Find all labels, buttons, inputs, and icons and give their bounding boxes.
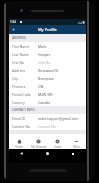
staticText: Postal Code (12, 92, 38, 97)
button[interactable]: Contact No (9, 122, 86, 130)
staticText: Brampton (38, 76, 55, 81)
staticText: 1:34 (10, 20, 17, 24)
staticText: Hopper (38, 52, 51, 57)
staticText: ON (38, 84, 44, 89)
staticText: Province (12, 84, 38, 89)
staticText: First Name (12, 44, 38, 49)
staticText: Unit No (12, 60, 38, 65)
staticText: City (12, 76, 38, 81)
button[interactable]: Home (46, 152, 49, 155)
button[interactable]: Back (20, 152, 23, 155)
staticText: M4W 3R5 (38, 92, 54, 97)
button[interactable]: Province (9, 82, 86, 90)
button[interactable]: Order (48, 134, 67, 149)
button[interactable]: Country (9, 98, 86, 106)
button[interactable]: Unit No (9, 58, 86, 66)
staticText: Contact No (12, 124, 38, 129)
button[interactable]: Address (9, 66, 86, 74)
staticText: Last Name (12, 52, 38, 57)
staticText: Order (54, 145, 62, 149)
staticText: My Rewards (31, 145, 47, 149)
staticText: Unit No (38, 60, 51, 65)
staticText: My Profile (38, 27, 57, 32)
button[interactable]: My Rewards (29, 134, 48, 149)
staticText: Address (12, 68, 38, 73)
button[interactable]: Home (9, 134, 29, 149)
staticText: Contact No (38, 124, 56, 129)
button[interactable]: First Name (9, 42, 86, 50)
staticText: CONTACT INFO (12, 108, 35, 112)
button[interactable]: Last Name (9, 50, 86, 58)
button[interactable]: Email ID (9, 114, 86, 122)
staticText: Email ID (12, 116, 38, 121)
staticText: Mark (38, 44, 47, 49)
staticText: Canada (38, 100, 51, 105)
button[interactable]: Postal Code (9, 90, 86, 98)
button[interactable]: City (9, 74, 86, 82)
staticText: Country (12, 100, 38, 105)
staticText: Rosewood St (38, 68, 59, 73)
button[interactable]: More (67, 134, 86, 149)
staticText: More (73, 145, 80, 149)
staticText: Home (15, 145, 23, 149)
staticText: mark.hopper@gmail.com (38, 116, 79, 121)
staticText: ADDRESS (12, 36, 26, 40)
button[interactable]: Navigate up (9, 25, 18, 34)
